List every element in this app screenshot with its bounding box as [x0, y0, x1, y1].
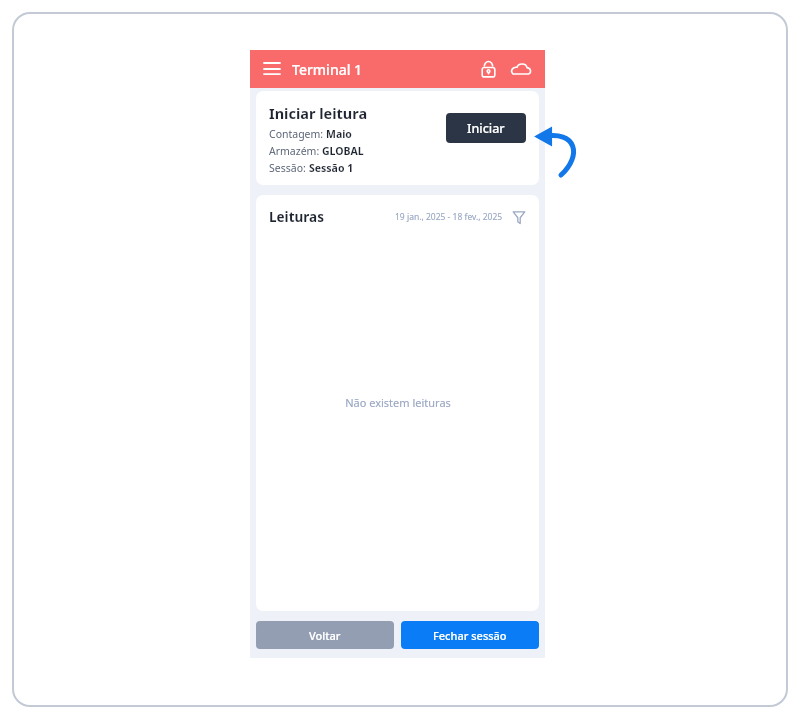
staticText: Armazém: — [269, 144, 322, 158]
staticText: GLOBAL — [322, 144, 364, 158]
button[interactable]: Menu — [261, 58, 283, 80]
staticText: Iniciar — [467, 120, 505, 137]
staticText: Voltar — [309, 628, 341, 643]
button[interactable]: Voltar — [256, 621, 394, 649]
button[interactable]: Cloud sync — [508, 56, 534, 82]
staticText: 19 jan., 2025 - 18 fev., 2025 — [395, 211, 503, 223]
staticText: Não existem leituras — [345, 395, 451, 410]
staticText: Sessão 1 — [309, 161, 354, 175]
staticText: Terminal 1 — [292, 60, 363, 79]
staticText: Sessão: — [269, 161, 309, 175]
button[interactable]: Fechar sessão — [401, 621, 539, 649]
staticText: Maio — [326, 127, 352, 141]
staticText: Contagem: — [269, 127, 326, 141]
staticText: Iniciar leitura — [269, 103, 368, 123]
staticText: Leituras — [269, 208, 324, 226]
button[interactable]: Iniciar — [446, 113, 526, 143]
button[interactable]: Filter — [510, 208, 528, 226]
staticText: Fechar sessão — [433, 628, 507, 643]
button[interactable]: Lock — [475, 56, 501, 82]
